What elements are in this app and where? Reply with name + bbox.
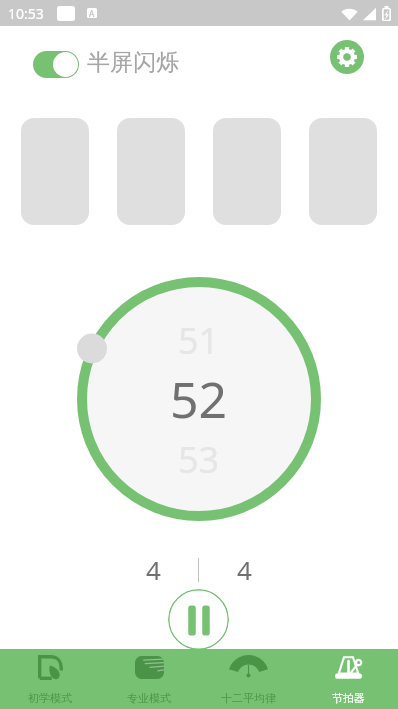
staticText: 4 <box>237 552 252 587</box>
staticText: 53 <box>178 435 220 484</box>
button[interactable]: 十二平均律 <box>198 649 298 709</box>
button[interactable] <box>213 118 281 225</box>
button[interactable] <box>309 118 377 225</box>
button[interactable] <box>117 118 185 225</box>
staticText: 10:53 <box>8 4 44 23</box>
staticText: 4 <box>146 552 161 587</box>
staticText: A <box>89 8 95 18</box>
button[interactable]: 专业模式 <box>99 649 198 709</box>
button[interactable]: 半屏闪烁 <box>33 50 179 79</box>
button[interactable]: Pause <box>168 589 229 650</box>
staticText: 十二平均律 <box>221 691 276 705</box>
staticText: 节拍器 <box>332 691 365 705</box>
staticText: 半屏闪烁 <box>87 48 179 77</box>
staticText: 初学模式 <box>28 691 72 705</box>
button[interactable]: 初学模式 <box>0 649 99 709</box>
staticText: 52 <box>170 365 228 433</box>
staticText: 51 <box>178 316 220 365</box>
button[interactable]: Settings <box>330 40 364 74</box>
staticText: 专业模式 <box>127 691 171 705</box>
button[interactable]: 4 <box>219 551 269 587</box>
button[interactable] <box>21 118 89 225</box>
button[interactable]: 节拍器 <box>298 649 398 709</box>
button[interactable]: 4 <box>128 551 178 587</box>
